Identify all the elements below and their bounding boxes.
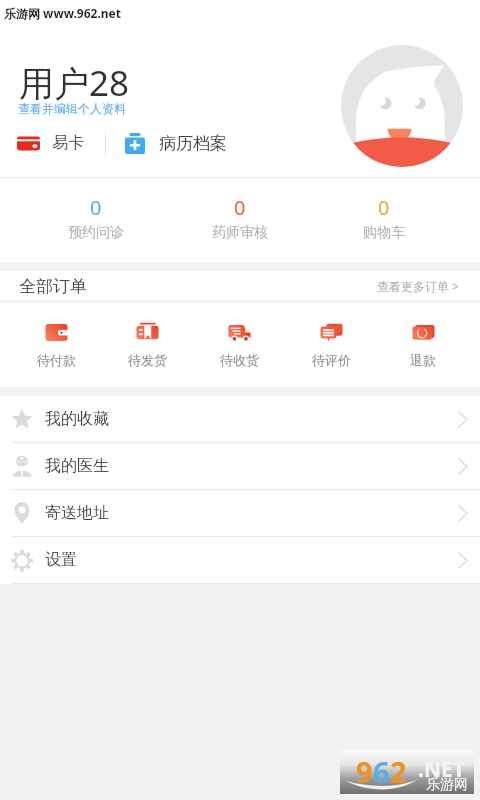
staticText: 易卡	[52, 133, 84, 153]
staticText: 乐游网 www.962.net	[4, 5, 121, 21]
button[interactable]: 查看更多订单 >	[377, 278, 480, 294]
button[interactable]: 0	[168, 197, 312, 245]
button[interactable]: 0	[312, 197, 456, 245]
staticText: 病历档案	[159, 133, 227, 154]
button[interactable]: 设置	[0, 537, 480, 584]
staticText: 设置	[45, 550, 77, 570]
button[interactable]: 寄送地址	[0, 490, 480, 537]
staticText: 用户28	[19, 59, 130, 107]
button[interactable]: 待付款	[11, 322, 102, 368]
button[interactable]: 我的医生	[0, 443, 480, 490]
staticText: 购物车	[363, 224, 405, 242]
staticText: 待发货	[128, 352, 167, 368]
staticText: 2	[390, 752, 407, 791]
staticText: 药师审核	[212, 224, 268, 242]
staticText: 待付款	[37, 352, 76, 368]
staticText: 预约问诊	[68, 224, 124, 242]
button[interactable]: 我的收藏	[0, 396, 480, 443]
button[interactable]: 待收货	[193, 322, 285, 368]
staticText: 查看更多订单 >	[377, 278, 459, 294]
staticText: 9	[356, 752, 373, 791]
staticText: 6	[373, 752, 390, 791]
button[interactable]: 待评价	[285, 322, 377, 368]
staticText: 全部订单	[19, 276, 87, 297]
staticText: 查看并编辑个人资料	[18, 101, 126, 116]
staticText: .NET	[418, 755, 465, 784]
staticText: 退款	[410, 352, 436, 368]
button[interactable]: 退款	[377, 322, 469, 368]
button[interactable]: 查看并编辑个人资料	[18, 101, 126, 116]
staticText: 0	[378, 194, 390, 221]
staticText: 0	[90, 194, 102, 221]
button[interactable]: 待发货	[102, 322, 193, 368]
staticText: 我的收藏	[45, 409, 109, 429]
staticText: 寄送地址	[45, 503, 109, 523]
staticText: 我的医生	[45, 456, 109, 476]
staticText: 待收货	[220, 352, 259, 368]
staticText: 0	[234, 194, 246, 221]
staticText: 待评价	[312, 352, 351, 368]
button[interactable]: 0	[24, 197, 168, 245]
button[interactable]: 易卡	[17, 131, 84, 155]
button[interactable]: 病历档案	[125, 133, 227, 154]
staticText: 乐游网	[426, 776, 468, 794]
